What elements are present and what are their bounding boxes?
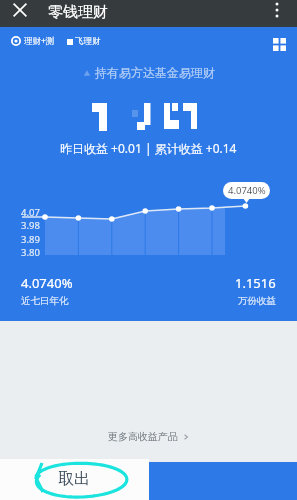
staticText: 万份收益 — [238, 295, 276, 307]
staticText: 3.98 — [21, 219, 40, 232]
staticText: 4.07 — [21, 206, 40, 219]
button[interactable]: 飞理财 — [67, 36, 101, 47]
staticText: 取出 — [58, 469, 90, 489]
staticText: 理财+测 — [24, 35, 55, 47]
button[interactable]: Close — [12, 2, 28, 18]
staticText: 1.1516 — [235, 274, 276, 292]
staticText: 3.80 — [21, 246, 40, 259]
button[interactable]: 更多高收益产品 — [108, 430, 190, 443]
staticText: 零钱理财 — [48, 3, 108, 22]
staticText: 昨日收益 +0.01 | 累计收益 +0.14 — [60, 140, 237, 156]
staticText: 更多高收益产品 — [108, 430, 178, 443]
staticText: 4.0740% — [21, 274, 73, 292]
button[interactable]: Apps — [273, 38, 286, 51]
staticText: 4.0740% — [228, 184, 266, 197]
staticText: 3.89 — [21, 233, 40, 246]
staticText: 近七日年化 — [21, 295, 69, 307]
button[interactable]: 理财+测 — [11, 35, 55, 47]
staticText: 飞理财 — [75, 36, 101, 47]
button[interactable]: 取出 — [0, 459, 149, 500]
button[interactable]: More options — [267, 0, 287, 20]
staticText: 持有易方达基金易理财 — [95, 65, 215, 80]
